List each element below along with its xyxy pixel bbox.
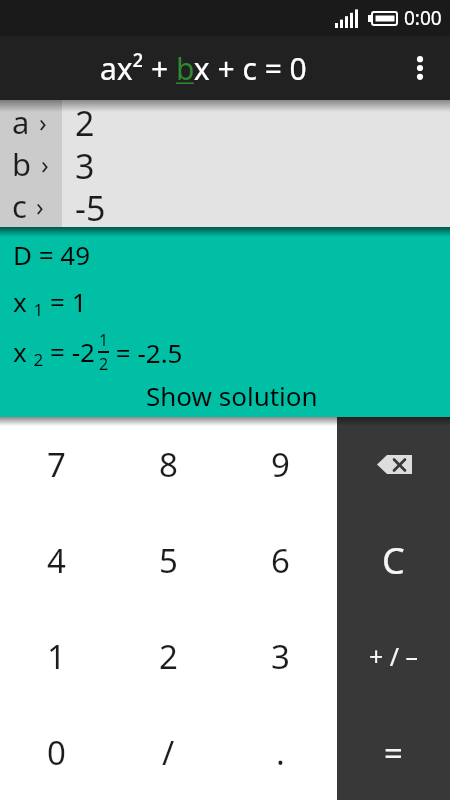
staticText: + / – bbox=[369, 639, 419, 673]
staticText: D = 49 bbox=[13, 237, 91, 272]
button[interactable]: = bbox=[337, 704, 450, 800]
button[interactable]: 2 bbox=[112, 608, 224, 704]
staticText: 1 bbox=[99, 329, 109, 351]
button[interactable]: / bbox=[112, 704, 224, 800]
button[interactable]: + / – bbox=[337, 608, 450, 704]
staticText: › bbox=[41, 147, 49, 181]
staticText: b bbox=[12, 143, 32, 185]
staticText: 7 bbox=[47, 442, 66, 487]
button[interactable]: . bbox=[224, 704, 337, 800]
staticText: 1 bbox=[47, 634, 66, 679]
staticText: 2 bbox=[159, 634, 178, 679]
staticText: 6 bbox=[271, 538, 290, 583]
staticText: 8 bbox=[159, 442, 178, 487]
staticText: 0:00 bbox=[404, 5, 442, 31]
button[interactable]: b bbox=[0, 143, 450, 185]
staticText: 2 bbox=[99, 353, 109, 375]
staticText: Show solution bbox=[146, 378, 318, 413]
staticText: a bbox=[12, 101, 30, 143]
button[interactable] bbox=[337, 417, 450, 512]
button[interactable]: 8 bbox=[112, 417, 224, 512]
staticText: 5 bbox=[159, 538, 178, 583]
button[interactable]: 7 bbox=[0, 417, 112, 512]
button[interactable]: a bbox=[0, 100, 450, 143]
staticText: / bbox=[162, 730, 175, 775]
staticText: -5 bbox=[75, 185, 106, 227]
staticText: x 2 = -2 bbox=[13, 334, 95, 371]
staticText: 3 bbox=[75, 143, 95, 185]
button[interactable]: 9 bbox=[224, 417, 337, 512]
staticText: › bbox=[36, 189, 44, 223]
button[interactable]: 5 bbox=[112, 512, 224, 608]
button[interactable]: 0 bbox=[0, 704, 112, 800]
button[interactable]: 6 bbox=[224, 512, 337, 608]
button[interactable]: Show solution bbox=[146, 378, 318, 417]
staticText: ax² + bx + c = 0 bbox=[100, 48, 307, 89]
staticText: 4 bbox=[47, 538, 66, 583]
staticText: 9 bbox=[271, 442, 290, 487]
staticText: = bbox=[384, 730, 403, 775]
staticText: c bbox=[12, 185, 27, 227]
staticText: › bbox=[39, 105, 47, 139]
button[interactable]: 1 bbox=[0, 608, 112, 704]
staticText: . bbox=[276, 730, 285, 775]
button[interactable]: c bbox=[0, 185, 450, 227]
button[interactable] bbox=[396, 44, 444, 92]
staticText: x 1 = 1 bbox=[13, 284, 87, 321]
staticText: 3 bbox=[271, 634, 290, 679]
staticText: 2 bbox=[75, 100, 95, 143]
staticText: C bbox=[382, 536, 405, 585]
staticText: 0 bbox=[47, 730, 66, 775]
button[interactable]: 3 bbox=[224, 608, 337, 704]
button[interactable]: 4 bbox=[0, 512, 112, 608]
staticText: = -2.5 bbox=[109, 335, 183, 370]
button[interactable]: C bbox=[337, 512, 450, 608]
